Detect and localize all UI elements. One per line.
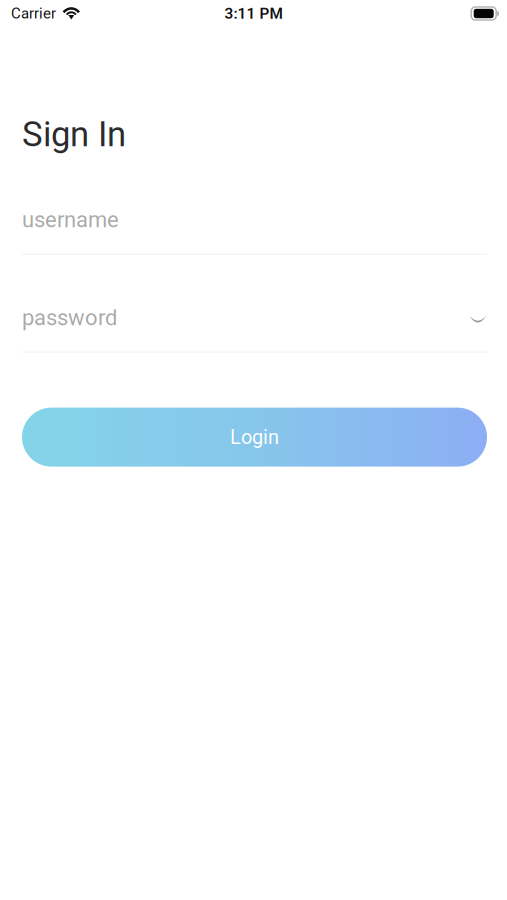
staticText: 3:11 PM	[224, 4, 282, 22]
staticText: username	[22, 207, 119, 232]
staticText: Login	[230, 425, 279, 449]
button[interactable]: Login	[22, 408, 487, 467]
staticText: Carrier	[11, 5, 56, 22]
button[interactable]: Show password	[457, 302, 487, 333]
staticText: Sign In	[22, 114, 126, 155]
staticText: password	[22, 305, 117, 330]
